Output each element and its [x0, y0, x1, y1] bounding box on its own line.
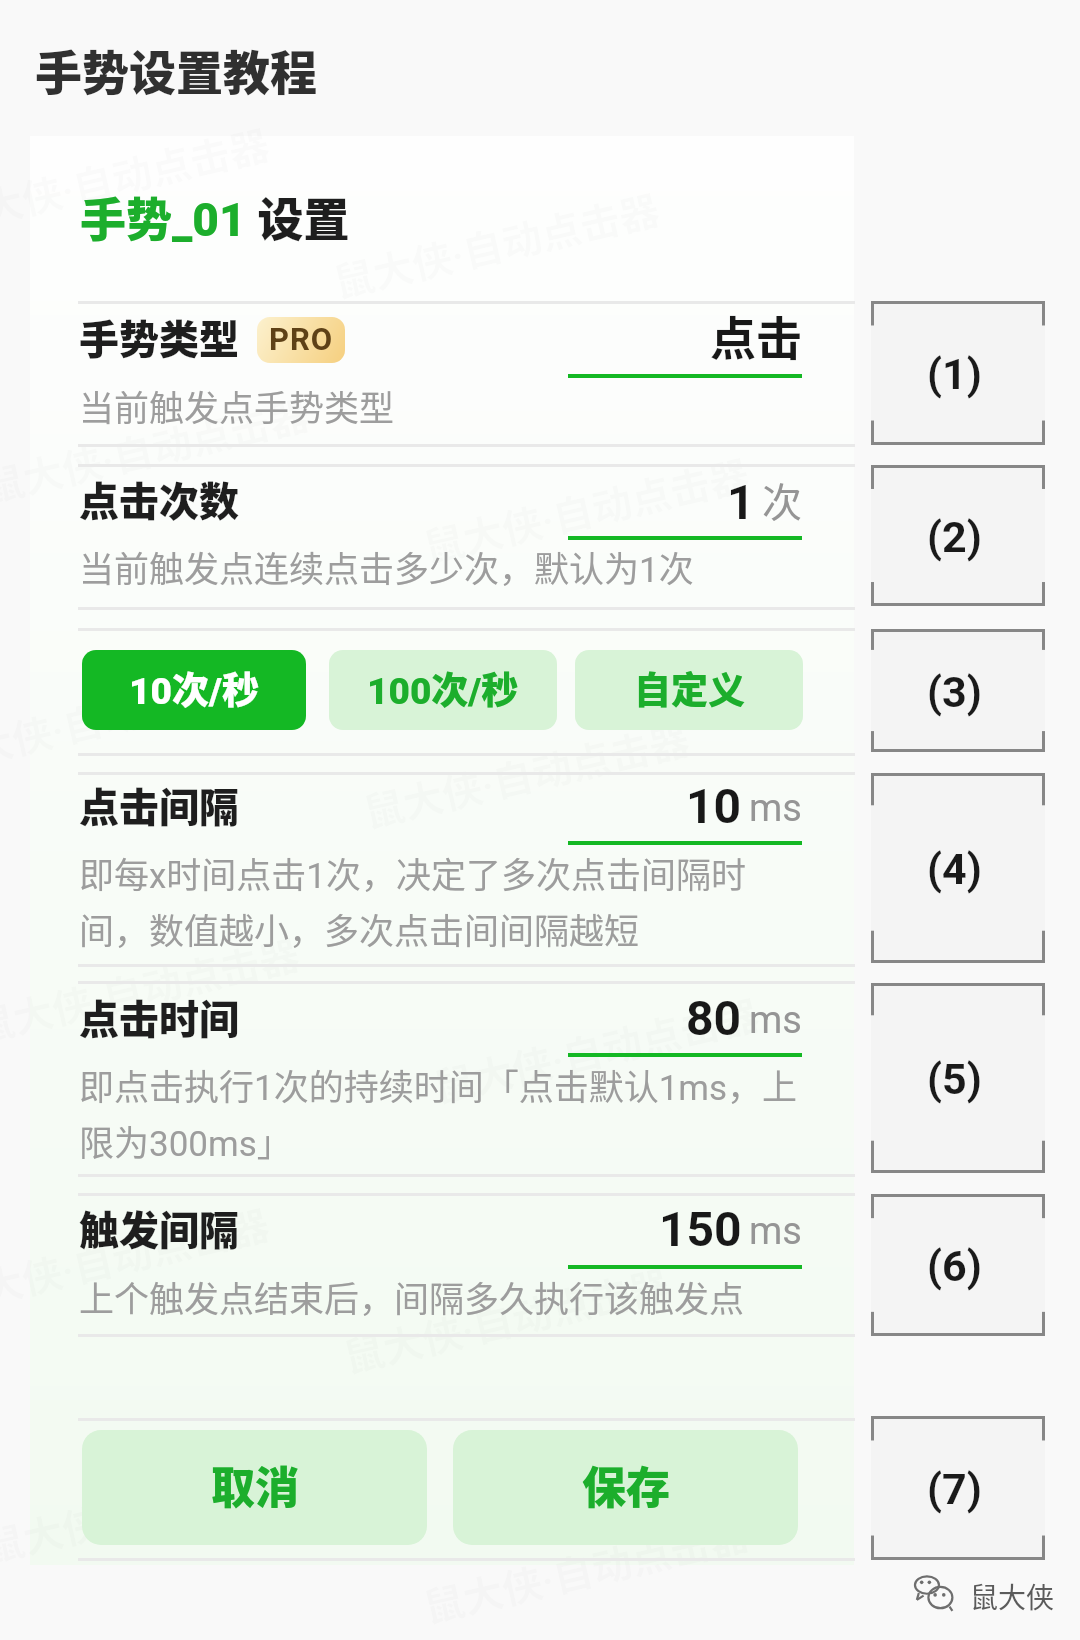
staticText: 鼠大侠·自动点击器: [328, 178, 665, 310]
staticText: 自定义: [634, 661, 745, 715]
button[interactable]: WeChat 鼠大侠: [914, 1574, 1046, 1612]
staticText: 鼠大侠·自动点击器: [0, 383, 315, 515]
staticText: 点击次数: [79, 470, 239, 528]
button[interactable]: 100次/秒: [329, 650, 557, 730]
button[interactable]: Step 5 reference: [871, 983, 1045, 1173]
button[interactable]: 手势类型 点击: [78, 304, 855, 442]
staticText: (1): [927, 349, 982, 399]
staticText: 100次/秒: [367, 661, 519, 715]
staticText: 80: [686, 990, 742, 1046]
staticText: (3): [927, 667, 982, 717]
button[interactable]: 10次/秒: [82, 650, 306, 730]
staticText: 鼠大侠·自动点击器: [358, 708, 695, 840]
staticText: 取消: [211, 1453, 299, 1517]
button[interactable]: Step 3 reference: [871, 629, 1045, 752]
staticText: 鼠大侠·自动点击器: [0, 1193, 275, 1325]
staticText: PRO: [269, 321, 334, 357]
staticText: 次: [762, 471, 802, 529]
staticText: 鼠大侠·自动点击器: [338, 1253, 675, 1385]
staticText: 10: [686, 778, 742, 834]
staticText: (6): [927, 1241, 982, 1291]
staticText: 手势_01: [80, 183, 246, 250]
staticText: 保存: [582, 1453, 670, 1517]
staticText: 即每x时间点击1次，决定了多次点击间隔时 间，数值越小，多次点击间间隔越短: [79, 847, 747, 954]
staticText: 当前触发点连续点击多少次，默认为1次: [79, 541, 694, 592]
staticText: (5): [927, 1054, 982, 1104]
staticText: 鼠大侠·自动点击器: [418, 443, 755, 575]
button[interactable]: Step 1 reference: [871, 301, 1045, 445]
staticText: 触发间隔: [79, 1199, 239, 1257]
staticText: 点击时间: [79, 988, 239, 1046]
button[interactable]: Step 7 reference: [871, 1416, 1045, 1560]
staticText: 鼠大侠: [970, 1576, 1055, 1614]
staticText: 当前触发点手势类型: [79, 380, 395, 431]
staticText: ms: [749, 786, 802, 831]
staticText: 即点击执行1次的持续时间「点击默认1ms，上 限为300ms」: [79, 1059, 798, 1166]
staticText: 上个触发点结束后，间隔多久执行该触发点: [79, 1271, 745, 1322]
staticText: 手势设置教程: [35, 35, 317, 103]
staticText: 鼠大侠·自动点击器: [428, 983, 765, 1115]
staticText: (7): [927, 1464, 982, 1514]
staticText: 设置: [246, 183, 350, 250]
button[interactable]: 保存: [453, 1430, 798, 1545]
button[interactable]: 取消: [82, 1430, 427, 1545]
staticText: 手势类型: [79, 308, 239, 366]
staticText: (2): [927, 512, 982, 562]
staticText: 鼠大侠·自动点击器: [0, 923, 305, 1055]
staticText: ms: [749, 998, 802, 1043]
staticText: ms: [749, 1209, 802, 1254]
button[interactable]: Step 4 reference: [871, 773, 1045, 963]
staticText: 10次/秒: [129, 661, 259, 715]
button[interactable]: 点击间隔 10 ms: [78, 775, 855, 962]
staticText: 1: [727, 474, 755, 530]
staticText: 150: [659, 1201, 742, 1257]
staticText: 点击间隔: [79, 776, 239, 834]
staticText: 鼠大侠·自动点击器: [418, 1503, 755, 1635]
button[interactable]: 点击时间 80 ms: [78, 984, 855, 1172]
button[interactable]: Step 6 reference: [871, 1194, 1045, 1336]
staticText: 鼠大侠·自动点击器: [0, 113, 275, 245]
button[interactable]: 自定义: [575, 650, 803, 730]
staticText: 鼠大侠·自动点击器: [0, 653, 265, 785]
button[interactable]: PRO feature: [257, 317, 345, 363]
button[interactable]: 点击次数 1 次: [78, 467, 855, 605]
button[interactable]: 触发间隔 150 ms: [78, 1196, 855, 1332]
button[interactable]: Step 2 reference: [871, 465, 1045, 606]
staticText: 鼠大侠·自动点击器: [0, 1443, 315, 1575]
staticText: 点击: [710, 302, 802, 369]
staticText: (4): [927, 844, 982, 894]
